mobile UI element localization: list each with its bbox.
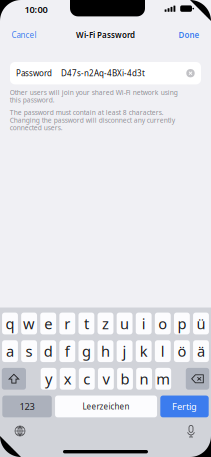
- button[interactable]: Clear text: [186, 69, 195, 78]
- staticText: Other users will join your shared Wi-Fi …: [10, 88, 178, 104]
- staticText: n: [140, 369, 149, 389]
- button[interactable]: d: [40, 340, 56, 362]
- button[interactable]: t: [78, 313, 94, 334]
- staticText: h: [101, 341, 110, 361]
- button[interactable]: Shift: [2, 368, 26, 390]
- button[interactable]: Cancel: [8, 26, 39, 44]
- button[interactable]: u: [117, 313, 132, 334]
- staticText: The password must contain at least 8 cha…: [10, 108, 175, 132]
- button[interactable]: a: [2, 340, 18, 362]
- button[interactable]: c: [79, 368, 95, 390]
- staticText: m: [156, 369, 170, 389]
- button[interactable]: z: [98, 313, 113, 334]
- staticText: ü: [196, 314, 205, 333]
- button[interactable]: Next keyboard: [9, 421, 31, 441]
- staticText: 10:00: [24, 3, 47, 16]
- button[interactable]: f: [59, 340, 75, 362]
- staticText: o: [158, 314, 167, 333]
- staticText: r: [64, 314, 70, 333]
- staticText: z: [102, 314, 109, 333]
- staticText: ö: [177, 341, 186, 361]
- button[interactable]: m: [155, 368, 171, 390]
- button[interactable]: v: [98, 368, 114, 390]
- button[interactable]: s: [21, 340, 37, 362]
- button[interactable]: n: [136, 368, 152, 390]
- button[interactable]: i: [136, 313, 152, 334]
- button[interactable]: p: [174, 313, 190, 334]
- button[interactable]: ä: [193, 340, 209, 362]
- button[interactable]: Delete: [186, 368, 209, 390]
- button[interactable]: w: [21, 313, 37, 334]
- staticText: u: [120, 314, 129, 333]
- staticText: b: [120, 369, 129, 389]
- staticText: e: [44, 314, 52, 333]
- staticText: f: [65, 341, 70, 361]
- button[interactable]: Leerzeichen: [55, 396, 157, 417]
- staticText: ä: [197, 341, 205, 361]
- staticText: k: [140, 341, 148, 361]
- staticText: i: [142, 314, 146, 333]
- button[interactable]: k: [136, 340, 152, 362]
- staticText: c: [83, 369, 90, 389]
- button[interactable]: o: [155, 313, 171, 334]
- button[interactable]: q: [2, 313, 18, 334]
- staticText: w: [23, 314, 35, 333]
- staticText: Leerzeichen: [82, 401, 129, 412]
- staticText: s: [26, 341, 33, 361]
- staticText: v: [102, 369, 109, 389]
- staticText: y: [45, 369, 52, 389]
- staticText: Fertig: [172, 400, 197, 413]
- button[interactable]: Dictation: [180, 421, 202, 441]
- button[interactable]: h: [98, 340, 113, 362]
- button[interactable]: ö: [174, 340, 190, 362]
- button[interactable]: y: [41, 368, 56, 390]
- staticText: t: [84, 314, 89, 333]
- staticText: Password: [16, 68, 52, 78]
- staticText: 123: [20, 400, 35, 413]
- staticText: a: [6, 341, 14, 361]
- button[interactable]: j: [117, 340, 132, 362]
- button[interactable]: l: [155, 340, 171, 362]
- button[interactable]: g: [78, 340, 94, 362]
- button[interactable]: b: [117, 368, 133, 390]
- staticText: x: [64, 369, 72, 389]
- staticText: Done: [178, 30, 199, 40]
- staticText: g: [82, 341, 91, 361]
- button[interactable]: Fertig: [160, 396, 209, 417]
- button[interactable]: 123: [2, 396, 52, 417]
- staticText: Cancel: [11, 30, 36, 40]
- staticText: j: [123, 341, 127, 361]
- button[interactable]: x: [60, 368, 76, 390]
- button[interactable]: e: [40, 313, 56, 334]
- staticText: D47s-n2Aq-4BXi-4d3t: [61, 68, 145, 78]
- button[interactable]: Done: [175, 26, 202, 44]
- button[interactable]: ü: [193, 313, 209, 334]
- button[interactable]: r: [59, 313, 75, 334]
- staticText: d: [44, 341, 53, 361]
- staticText: Wi-Fi Password: [76, 30, 135, 40]
- staticText: q: [5, 314, 14, 333]
- staticText: l: [161, 341, 165, 361]
- staticText: p: [177, 314, 186, 333]
